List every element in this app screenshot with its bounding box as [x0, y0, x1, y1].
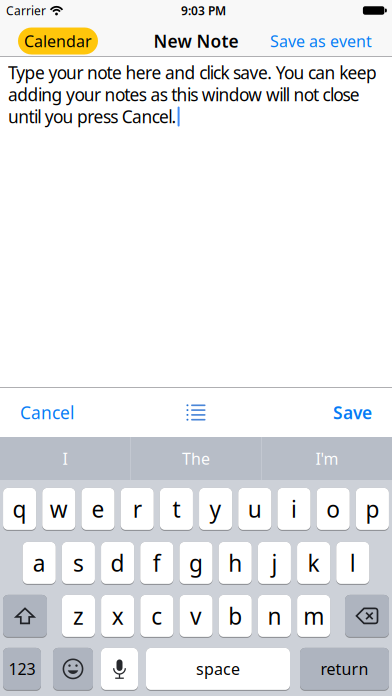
button[interactable]: Delete	[345, 595, 389, 638]
button[interactable]: Numbers	[3, 648, 41, 691]
button[interactable]: Calendar	[18, 27, 98, 54]
button[interactable]: Save	[333, 401, 372, 424]
button[interactable]: The	[131, 437, 261, 480]
button[interactable]: Cancel	[20, 401, 74, 424]
button[interactable]: b	[219, 595, 252, 638]
button[interactable]: Checklist	[186, 404, 205, 421]
staticText: b	[228, 601, 242, 631]
staticText: I	[62, 448, 67, 469]
staticText: 9:03 PM	[181, 2, 226, 18]
button[interactable]: q	[3, 488, 36, 531]
staticText: l	[350, 548, 356, 578]
staticText: h	[228, 548, 242, 578]
staticText: s	[73, 548, 84, 578]
button[interactable]: y	[199, 488, 232, 531]
staticText: u	[248, 494, 262, 524]
button[interactable]: l	[336, 542, 369, 585]
button[interactable]: return	[300, 648, 389, 691]
staticText: Cancel	[20, 401, 74, 424]
button[interactable]: s	[62, 542, 95, 585]
button[interactable]: u	[238, 488, 271, 531]
staticText: return	[320, 658, 368, 679]
button[interactable]: z	[62, 595, 95, 638]
button[interactable]: k	[297, 542, 330, 585]
staticText: I'm	[315, 448, 338, 469]
staticText: The	[182, 448, 210, 469]
staticText: Carrier	[6, 2, 46, 18]
button[interactable]: Shift	[3, 595, 47, 638]
staticText: k	[308, 548, 320, 578]
button[interactable]: d	[101, 542, 134, 585]
button[interactable]: h	[219, 542, 252, 585]
staticText: until you press Cancel.	[8, 105, 177, 128]
button[interactable]: r	[121, 488, 154, 531]
staticText: 123	[8, 658, 35, 679]
staticText: r	[133, 494, 142, 524]
staticText: z	[73, 601, 84, 631]
button[interactable]: n	[258, 595, 291, 638]
button[interactable]: space	[146, 648, 290, 691]
button[interactable]: m	[297, 595, 330, 638]
button[interactable]: I'm	[262, 437, 392, 480]
staticText: m	[303, 601, 324, 631]
button[interactable]: f	[140, 542, 173, 585]
button[interactable]: I	[0, 437, 130, 480]
staticText: f	[153, 548, 161, 578]
button[interactable]: v	[179, 595, 213, 638]
staticText: adding your notes as this window will no…	[8, 83, 360, 106]
staticText: g	[189, 548, 203, 578]
staticText: Calendar	[24, 30, 92, 52]
staticText: Type your note here and click save. You …	[8, 61, 377, 84]
button[interactable]: Save as event	[270, 30, 372, 52]
staticText: j	[271, 548, 277, 578]
staticText: a	[33, 548, 46, 578]
button[interactable]: x	[101, 595, 134, 638]
staticText: x	[112, 601, 124, 631]
button[interactable]: a	[23, 542, 56, 585]
staticText: c	[151, 601, 162, 631]
button[interactable]: w	[42, 488, 75, 531]
button[interactable]: i	[277, 488, 310, 531]
button[interactable]: Emoji	[53, 648, 93, 691]
staticText: q	[13, 494, 27, 524]
staticText: space	[196, 658, 240, 679]
button[interactable]: j	[258, 542, 291, 585]
button[interactable]: c	[140, 595, 173, 638]
staticText: w	[50, 494, 68, 524]
staticText: Save	[333, 401, 372, 424]
button[interactable]: t	[160, 488, 193, 531]
staticText: New Note	[153, 29, 238, 52]
staticText: n	[267, 601, 281, 631]
staticText: o	[326, 494, 340, 524]
staticText: p	[365, 494, 379, 524]
button[interactable]: Dictate	[101, 648, 138, 691]
staticText: e	[91, 494, 104, 524]
button[interactable]: p	[356, 488, 389, 531]
staticText: t	[172, 494, 180, 524]
staticText: v	[190, 601, 202, 631]
staticText: Save as event	[270, 30, 372, 52]
button[interactable]: o	[317, 488, 350, 531]
staticText: y	[210, 494, 222, 524]
staticText: i	[291, 494, 297, 524]
button[interactable]: g	[179, 542, 212, 585]
button[interactable]: e	[81, 488, 114, 531]
staticText: d	[111, 548, 125, 578]
